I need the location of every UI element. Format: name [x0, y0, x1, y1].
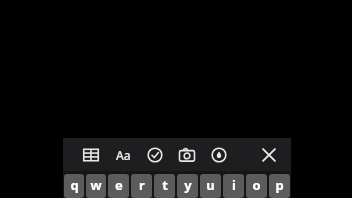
button[interactable]: Text formatting [112, 144, 134, 166]
button[interactable]: e [108, 174, 129, 198]
staticText: Aa [116, 147, 131, 163]
button[interactable]: u [200, 174, 221, 198]
button[interactable]: o [246, 174, 267, 198]
staticText: o [252, 176, 261, 194]
button[interactable]: p [269, 174, 290, 198]
staticText: u [206, 176, 215, 194]
button[interactable]: Mark as done [144, 144, 166, 166]
staticText: w [90, 176, 102, 194]
button[interactable]: i [223, 174, 244, 198]
button[interactable]: t [154, 174, 175, 198]
staticText: i [232, 176, 236, 194]
staticText: e [115, 176, 123, 194]
button[interactable]: q [64, 174, 84, 198]
button[interactable]: Close [258, 144, 280, 166]
button[interactable]: r [131, 174, 152, 198]
button[interactable]: Insert table [80, 144, 102, 166]
staticText: q [70, 176, 79, 194]
button[interactable]: Markup [208, 144, 230, 166]
staticText: r [139, 176, 145, 194]
button[interactable]: Camera [176, 144, 198, 166]
button[interactable]: y [177, 174, 198, 198]
staticText: p [275, 176, 284, 194]
button[interactable]: w [86, 174, 106, 198]
staticText: t [162, 176, 168, 194]
staticText: y [184, 176, 192, 194]
